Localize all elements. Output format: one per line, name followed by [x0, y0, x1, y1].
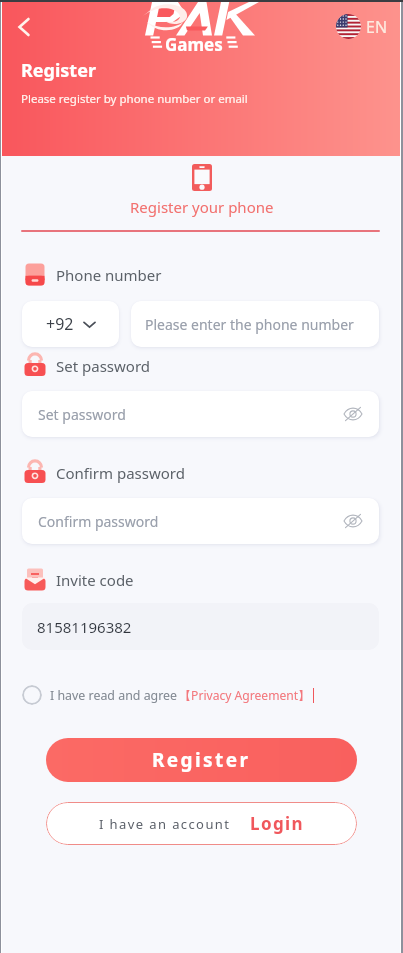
staticText: 81581196382 — [37, 617, 132, 637]
staticText: Confirm password — [38, 512, 159, 531]
button[interactable]: +92 — [22, 301, 119, 347]
button[interactable]: Confirm password — [22, 498, 379, 544]
staticText: Set password — [56, 356, 151, 376]
staticText: 【Privacy Agreement】 — [179, 687, 311, 704]
button[interactable]: Language English — [336, 14, 388, 39]
button[interactable]: Please enter the phone number — [131, 301, 379, 347]
button[interactable]: Show password — [342, 510, 364, 532]
staticText: Invite code — [56, 570, 134, 590]
staticText: Register — [152, 747, 251, 773]
staticText: Register your phone — [130, 197, 274, 217]
button[interactable]: Show password — [342, 403, 364, 425]
staticText: I have read and agree — [50, 687, 178, 704]
staticText: Set password — [38, 405, 126, 424]
staticText: Phone number — [56, 265, 162, 285]
staticText: Please register by phone number or email — [21, 91, 248, 107]
button[interactable]: Set password — [22, 391, 379, 437]
button[interactable]: Agree to privacy agreement — [22, 685, 42, 705]
button[interactable]: I have an account — [46, 802, 357, 845]
staticText: I have an account — [99, 815, 231, 833]
staticText: +92 — [46, 313, 74, 335]
staticText: Login — [250, 812, 305, 835]
button[interactable]: Register — [46, 738, 357, 782]
staticText: Games — [165, 33, 223, 56]
staticText: Register — [21, 58, 96, 83]
button[interactable]: Back — [6, 9, 42, 45]
staticText: Confirm password — [56, 463, 185, 483]
button[interactable]: 81581196382 — [22, 603, 379, 650]
staticText: EN — [366, 16, 388, 38]
button[interactable]: 【Privacy Agreement】 — [179, 687, 314, 704]
staticText: Please enter the phone number — [145, 315, 354, 334]
